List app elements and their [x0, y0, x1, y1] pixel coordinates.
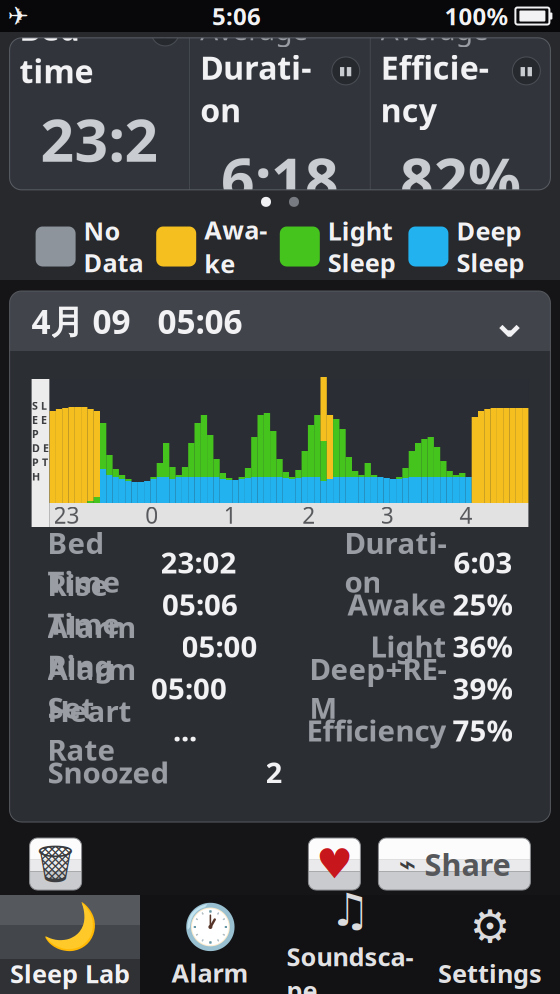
staticText: 05:00 [151, 668, 227, 707]
staticText: Heart Rate [48, 691, 132, 769]
staticText: Efficiency [381, 46, 489, 131]
staticText: 75% [452, 710, 512, 749]
staticText: Bed time [20, 7, 94, 92]
staticText: Data [84, 245, 144, 279]
button[interactable]: Average [10, 0, 189, 266]
staticText: 36% [452, 626, 512, 665]
staticText: Duration [200, 46, 311, 131]
staticText: 🕐 [182, 901, 237, 952]
staticText: Share [424, 844, 510, 884]
button[interactable]: 4月 09 05:06 [10, 291, 550, 351]
staticText: Rise Time [48, 565, 121, 643]
staticText: ▮▮ [158, 25, 172, 39]
staticText: 1 [224, 500, 237, 530]
staticText: Deep+REM [309, 649, 446, 727]
staticText: ♫ [329, 884, 370, 936]
staticText: 23:27 [40, 100, 158, 256]
staticText: 0 [145, 500, 158, 530]
staticText: Awake [347, 584, 446, 623]
staticText: S L E E P D E P T H [32, 398, 49, 483]
staticText: Sleep [328, 245, 396, 279]
staticText: Efficiency [306, 710, 446, 749]
staticText: 5:06 [212, 0, 261, 32]
staticText: ▮▮ [519, 64, 533, 78]
staticText: 39% [452, 668, 512, 707]
button[interactable]: 🌙 [0, 895, 140, 994]
staticText: Bed Time [48, 523, 121, 601]
staticText: Sleep [456, 245, 524, 279]
staticText: Light [328, 214, 393, 247]
staticText: Settings [438, 956, 542, 990]
button[interactable]: Average [190, 1, 370, 227]
staticText: 6:18 [221, 139, 339, 217]
staticText: 23:02 [160, 542, 236, 581]
button[interactable]: ⚙ [420, 895, 560, 994]
staticText: 3 [381, 500, 394, 530]
staticText: Deep [456, 214, 521, 247]
staticText: Alarm Set [48, 649, 137, 727]
staticText: 4月 09 05:06 [32, 299, 243, 343]
staticText: Awake [204, 213, 267, 280]
staticText: 05:00 [181, 626, 257, 665]
staticText: Average [200, 11, 308, 48]
button[interactable]: ⌁ [378, 838, 530, 890]
staticText: 82% [400, 139, 521, 217]
staticText: 100% [444, 0, 508, 32]
staticText: Alarm Ring [48, 607, 137, 685]
staticText: ⚙ [469, 901, 510, 952]
staticText: 23 [54, 500, 80, 530]
staticText: ⌄ [490, 295, 528, 347]
staticText: ⌁ [398, 847, 416, 881]
staticText: 🌙 [42, 901, 98, 953]
button[interactable]: ♫ [280, 895, 420, 994]
staticText: 🗑 [33, 843, 79, 884]
button[interactable]: Favorite [308, 838, 360, 890]
staticText: Light [370, 626, 446, 665]
button[interactable]: 🕐 [140, 895, 280, 994]
staticText: Duration [344, 523, 446, 601]
button[interactable]: Delete [30, 838, 82, 890]
staticText: 25% [452, 584, 512, 623]
staticText: No [84, 214, 121, 247]
button[interactable]: Average [371, 1, 550, 227]
staticText: Soundscape [286, 940, 413, 994]
staticText: ... [173, 710, 197, 749]
staticText: Average [381, 11, 489, 48]
staticText: 05:06 [162, 584, 238, 623]
staticText: Alarm [171, 956, 248, 989]
staticText: ▮▮ [339, 64, 353, 78]
staticText: Sleep Lab [10, 957, 130, 990]
staticText: ✈ [8, 2, 29, 30]
staticText: 2 [265, 752, 282, 791]
staticText: Snoozed [48, 752, 170, 791]
staticText: ♥ [316, 840, 353, 887]
staticText: 2 [302, 500, 315, 530]
staticText: 6:03 [453, 542, 512, 581]
staticText: 4 [459, 500, 472, 530]
